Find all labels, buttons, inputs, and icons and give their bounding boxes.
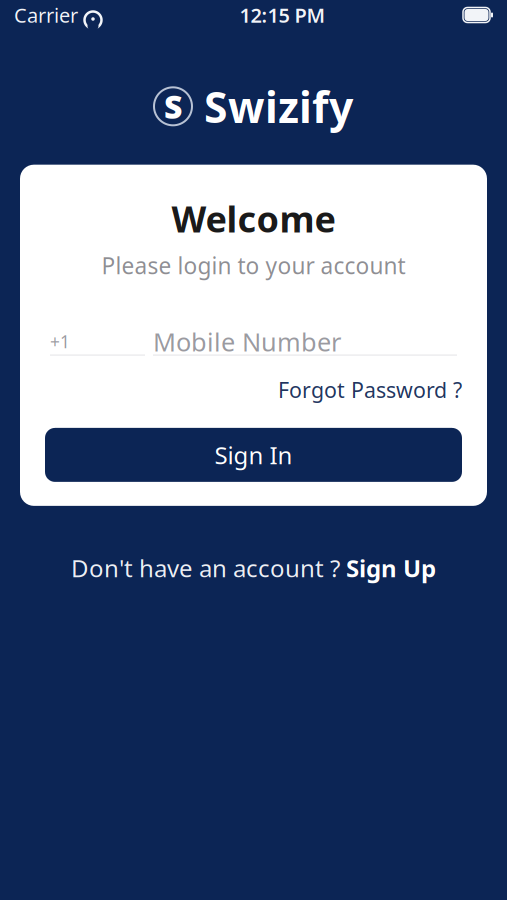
staticText: Swizify: [204, 78, 353, 135]
staticText: Carrier: [14, 2, 78, 28]
button[interactable]: Don't have an account ?: [55, 544, 452, 592]
staticText: Don't have an account ?: [71, 552, 346, 584]
button[interactable]: Sign In: [45, 428, 462, 482]
button[interactable]: Forgot Password ?: [278, 370, 462, 410]
staticText: Mobile Number: [153, 325, 341, 358]
staticText: +1: [50, 330, 70, 353]
staticText: Sign In: [214, 439, 292, 471]
staticText: Forgot Password ?: [278, 376, 462, 404]
staticText: S: [164, 85, 182, 128]
staticText: Welcome: [171, 195, 335, 242]
staticText: Please login to your account: [101, 250, 405, 281]
staticText: 12:15 PM: [239, 2, 325, 28]
staticText: Sign Up: [346, 552, 436, 584]
